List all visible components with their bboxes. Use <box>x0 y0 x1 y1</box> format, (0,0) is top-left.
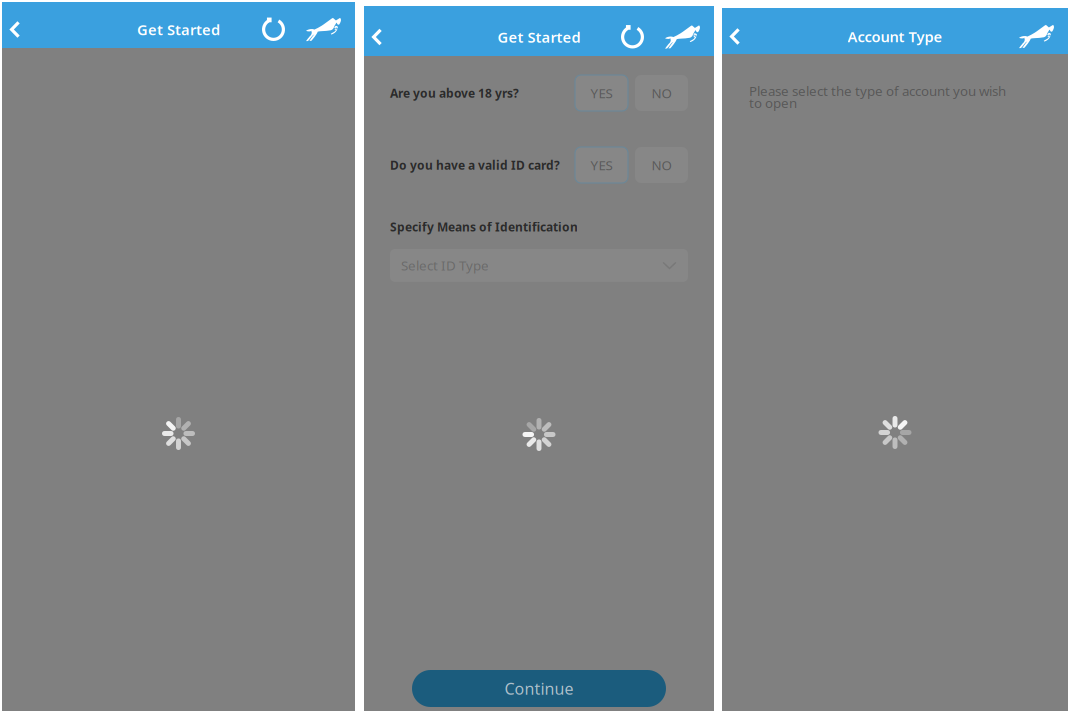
staticText: to open <box>749 94 797 112</box>
staticText: Are you above 18 yrs? <box>390 85 519 101</box>
staticText: Get Started <box>497 27 580 47</box>
button[interactable]: YES <box>575 147 628 183</box>
staticText: Account Type <box>847 27 942 46</box>
staticText: Please select the type of account you wi… <box>749 82 1006 100</box>
button[interactable]: Back <box>364 23 400 51</box>
staticText: NO <box>651 156 671 174</box>
staticText: Select ID Type <box>401 257 489 274</box>
staticText: Continue <box>504 678 573 699</box>
button[interactable]: Continue <box>412 670 666 707</box>
staticText: NO <box>651 84 671 102</box>
staticText: Get Started <box>137 20 220 39</box>
button[interactable]: NO <box>635 147 688 183</box>
button[interactable]: Select ID Type <box>390 249 688 282</box>
staticText: Specify Means of Identification <box>390 219 578 235</box>
button[interactable]: Home <box>665 23 700 51</box>
button[interactable]: NO <box>635 75 688 111</box>
button[interactable]: YES <box>575 75 628 111</box>
staticText: Do you have a valid ID card? <box>390 157 560 173</box>
staticText: YES <box>590 156 612 174</box>
staticText: YES <box>590 84 612 102</box>
button[interactable]: Back <box>2 16 38 43</box>
button[interactable]: Refresh <box>262 16 285 43</box>
button[interactable]: Back <box>722 23 758 50</box>
button[interactable]: Home <box>1019 23 1054 50</box>
button[interactable]: Refresh <box>621 23 644 51</box>
button[interactable]: Home <box>306 16 341 43</box>
